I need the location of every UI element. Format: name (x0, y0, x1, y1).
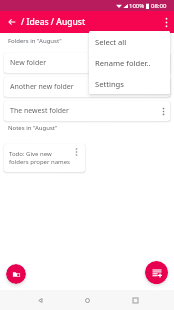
button[interactable]: Todo: Give new folders proper names (4, 144, 85, 172)
button[interactable]: Folder options (156, 101, 170, 121)
staticText: Folders in "August" (8, 37, 62, 45)
button[interactable]: The newest folder (4, 101, 170, 121)
staticText: 100% (129, 2, 145, 10)
button[interactable]: New note (145, 261, 168, 284)
button[interactable]: Back (5, 15, 19, 29)
staticText: Todo: Give new folders proper names (9, 150, 71, 166)
staticText: Notes in "August" (8, 124, 58, 132)
staticText: 08:00 (151, 2, 167, 10)
button[interactable]: Another new folder (4, 77, 170, 97)
button[interactable]: Back (32, 292, 48, 308)
button[interactable]: Home (79, 292, 95, 308)
staticText: The newest folder (10, 106, 69, 116)
staticText: Select all (95, 37, 127, 47)
button[interactable]: Note options (67, 144, 85, 160)
button[interactable]: New folder (6, 264, 26, 284)
button[interactable]: Folder options (156, 77, 170, 97)
button[interactable]: Recents (127, 292, 143, 308)
staticText: Rename folder.. (95, 58, 151, 68)
staticText: Settings (95, 79, 124, 89)
staticText: Another new folder (10, 82, 74, 92)
button[interactable]: Settings (89, 73, 170, 94)
button[interactable]: Rename folder.. (89, 52, 170, 73)
button[interactable]: New folder (4, 53, 170, 73)
button[interactable]: More options (158, 14, 174, 30)
staticText: New folder (10, 58, 47, 68)
button[interactable]: Select all (89, 31, 170, 52)
staticText: / Ideas / August (21, 16, 86, 28)
